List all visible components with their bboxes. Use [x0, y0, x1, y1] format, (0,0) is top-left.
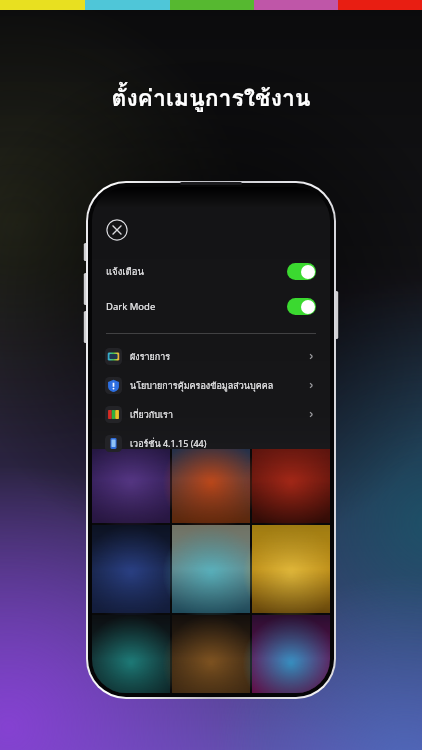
button[interactable] — [172, 435, 250, 523]
button[interactable] — [252, 615, 330, 693]
staticText: นโยบายการคุ้มครองข้อมูลส่วนบุคคล — [130, 379, 307, 393]
staticText: ผังรายการ — [130, 350, 307, 364]
button[interactable] — [252, 435, 330, 523]
button[interactable]: เกี่ยวกับเรา — [92, 400, 330, 429]
button[interactable]: Dark Mode — [92, 295, 330, 317]
button[interactable] — [172, 525, 250, 613]
staticText: แจ้งเตือน — [106, 264, 287, 279]
button[interactable] — [252, 525, 330, 613]
staticText: Dark Mode — [106, 300, 287, 313]
button[interactable]: เวอร์ชั่น 4.1.15 (44) — [92, 429, 330, 458]
button[interactable] — [92, 525, 170, 613]
staticText: เวอร์ชั่น 4.1.15 (44) — [130, 437, 316, 451]
button[interactable]: นโยบายการคุ้มครองข้อมูลส่วนบุคคล — [92, 371, 330, 400]
button[interactable]: แจ้งเตือน — [92, 260, 330, 282]
staticText: เกี่ยวกับเรา — [130, 408, 307, 422]
staticText: ตั้งค่าเมนูการใช้งาน — [111, 80, 311, 117]
button[interactable]: ผังรายการ — [92, 342, 330, 371]
button[interactable] — [172, 615, 250, 693]
button[interactable] — [92, 615, 170, 693]
button[interactable]: Toggle — [287, 298, 316, 315]
button[interactable]: Close — [106, 219, 128, 241]
button[interactable]: Toggle — [287, 263, 316, 280]
button[interactable] — [92, 435, 170, 523]
